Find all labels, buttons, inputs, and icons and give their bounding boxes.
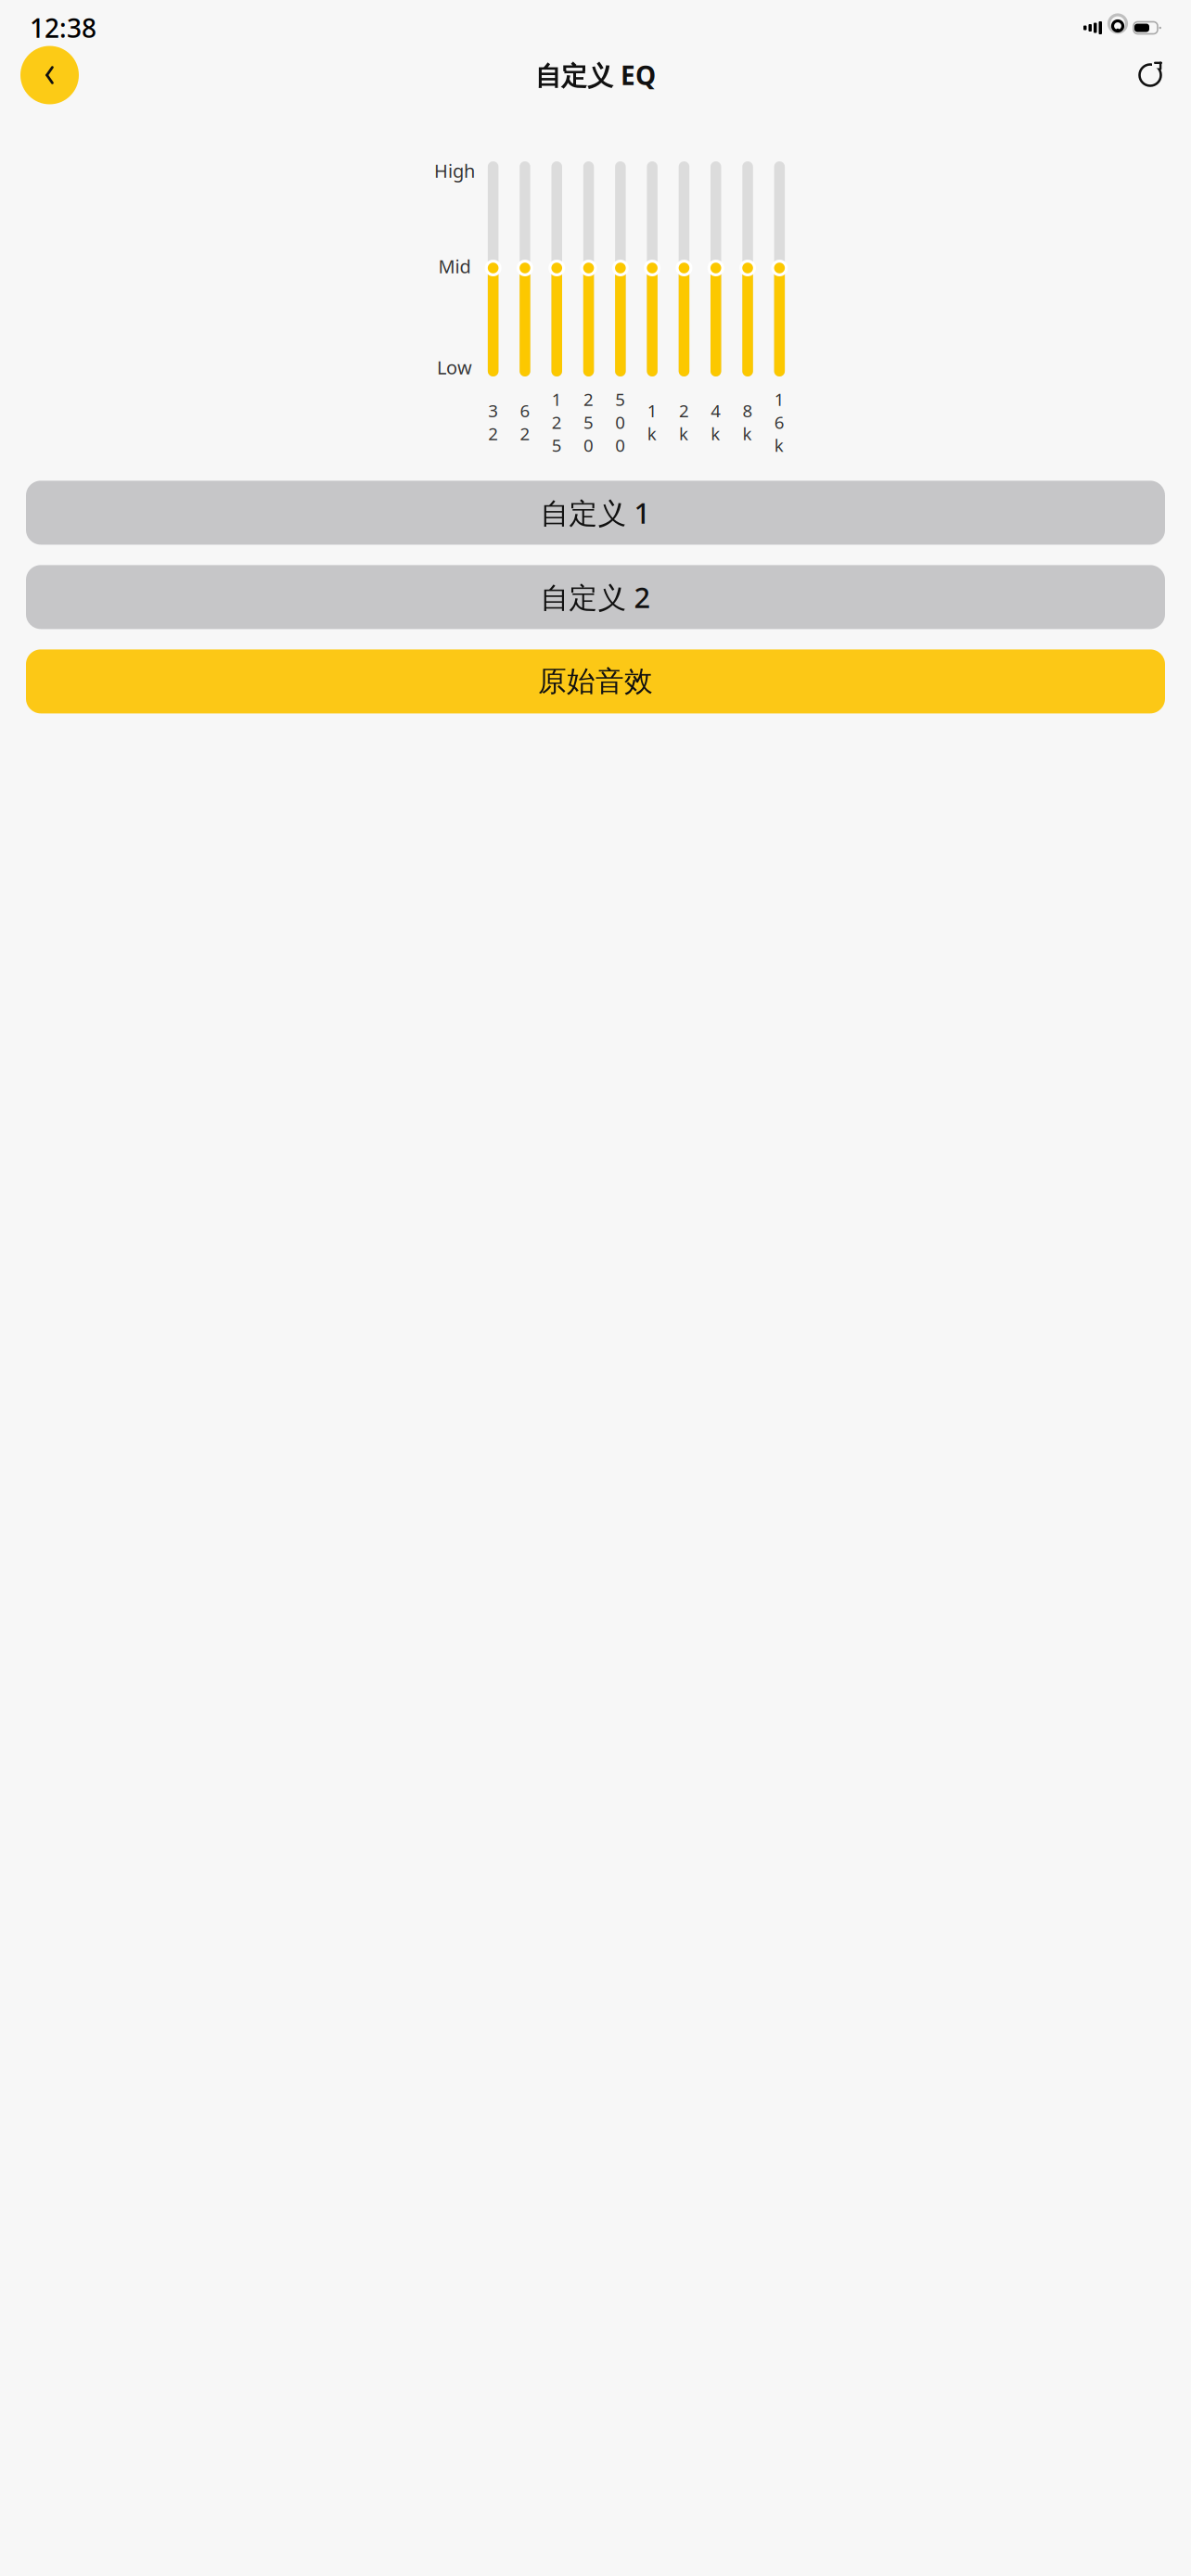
staticText: 500 xyxy=(615,388,625,457)
staticText: 4k xyxy=(711,399,721,445)
staticText: 自定义 EQ xyxy=(535,58,656,92)
staticText: 原始音效 xyxy=(538,664,653,699)
staticText: 自定义 2 xyxy=(540,578,651,616)
staticText: 自定义 1 xyxy=(540,494,651,532)
staticText: Mid xyxy=(438,254,471,278)
staticText: 16k xyxy=(774,388,785,457)
button[interactable]: 自定义 2 xyxy=(26,565,1165,629)
button[interactable]: Reset xyxy=(1130,55,1171,96)
staticText: 2k xyxy=(679,399,689,445)
button[interactable]: 自定义 1 xyxy=(26,481,1165,545)
staticText: Low xyxy=(437,355,472,380)
staticText: High xyxy=(434,158,475,183)
staticText: 62 xyxy=(520,399,530,445)
staticText: 250 xyxy=(583,388,594,457)
staticText: 125 xyxy=(552,388,562,457)
staticText: 12:38 xyxy=(30,11,96,45)
staticText: 8k xyxy=(743,399,753,445)
button[interactable]: 原始音效 xyxy=(26,649,1165,713)
staticText: 32 xyxy=(488,399,498,445)
button[interactable]: Back xyxy=(20,46,79,104)
staticText: 1k xyxy=(647,399,657,445)
